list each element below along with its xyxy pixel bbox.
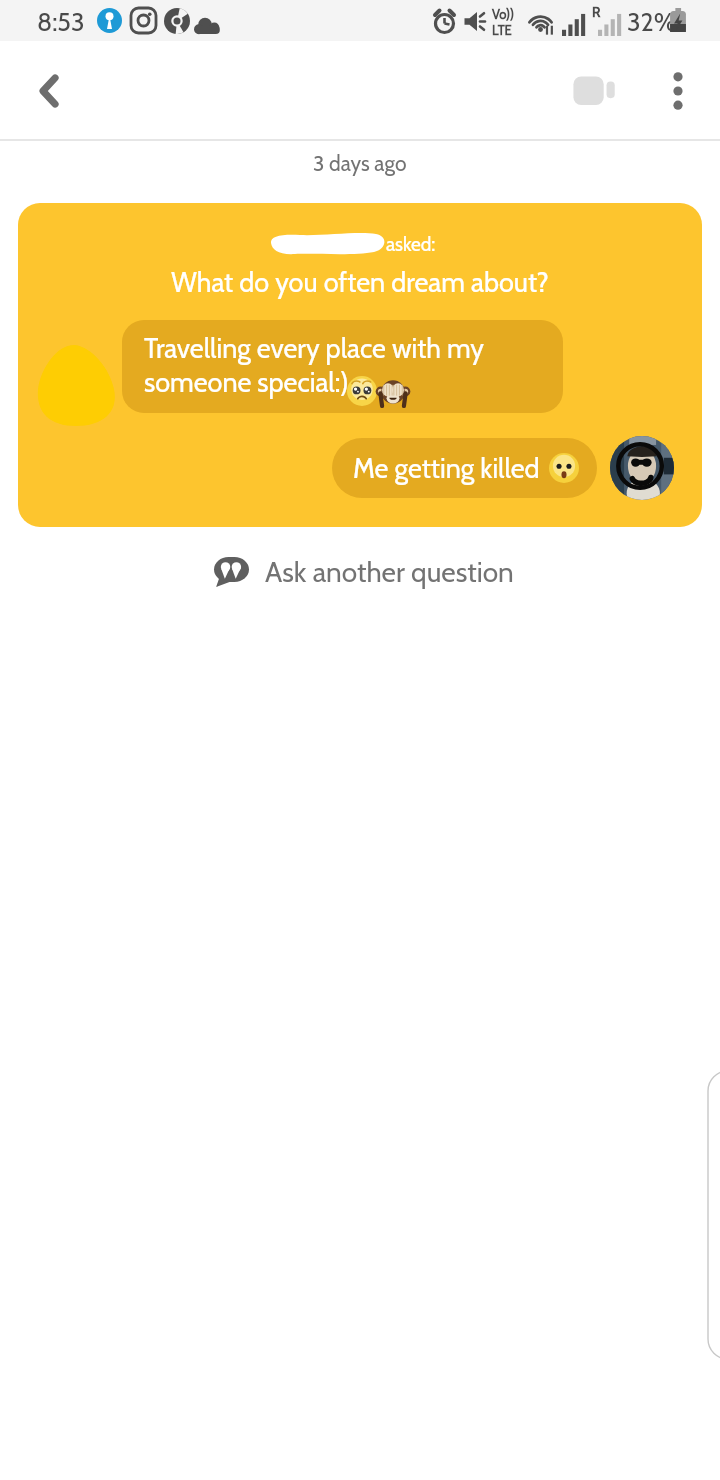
staticText: What do you often dream about? bbox=[171, 266, 549, 299]
staticText: Me getting killed bbox=[353, 452, 540, 485]
staticText: R bbox=[592, 3, 601, 20]
staticText: 32% bbox=[627, 7, 677, 37]
staticText: Vo)) bbox=[492, 6, 515, 22]
staticText: 3 days ago bbox=[313, 151, 407, 177]
button[interactable]: asked: bbox=[18, 203, 702, 527]
staticText: Ask another question bbox=[265, 555, 514, 589]
staticText: Travelling every place with my someone s… bbox=[144, 332, 484, 399]
button[interactable]: Ask another question bbox=[4, 541, 720, 603]
button[interactable]: More options bbox=[646, 59, 710, 123]
button[interactable]: Back bbox=[18, 59, 82, 123]
staticText: asked: bbox=[386, 233, 436, 256]
staticText: 8:53 bbox=[37, 7, 85, 37]
staticText: LTE bbox=[492, 22, 512, 38]
button[interactable]: Video call bbox=[564, 59, 628, 123]
